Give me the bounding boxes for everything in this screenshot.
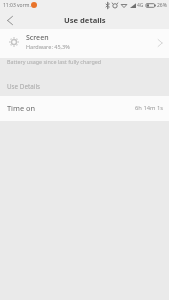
- staticText: 11:03 vorm.: [3, 2, 31, 9]
- button[interactable]: Screen: [0, 29, 169, 58]
- staticText: 4G: [137, 2, 144, 9]
- staticText: Screen: [26, 33, 49, 43]
- button[interactable]: Back: [0, 11, 20, 29]
- staticText: 26%: [157, 2, 167, 9]
- staticText: Use details: [64, 15, 106, 25]
- button[interactable]: Time on: [0, 96, 169, 121]
- staticText: Time on: [7, 103, 36, 113]
- staticText: 6h 14m 1s: [135, 104, 164, 112]
- staticText: Battery usage since last fully charged: [7, 58, 102, 65]
- staticText: Use Details: [7, 82, 41, 91]
- staticText: Hardware: 45,3%: [26, 43, 70, 50]
